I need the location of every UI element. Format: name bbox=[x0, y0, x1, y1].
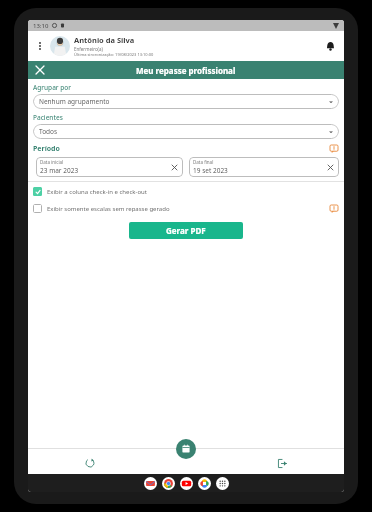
button[interactable]: All apps bbox=[216, 477, 229, 490]
button[interactable]: Help bbox=[328, 203, 339, 214]
staticText: Exibir a coluna check-in e check-out bbox=[47, 188, 147, 196]
button[interactable]: Help bbox=[328, 143, 339, 154]
button[interactable]: Exit bbox=[275, 456, 289, 470]
button[interactable]: Nenhum agrupamento bbox=[33, 94, 339, 109]
staticText: Enfermeiro(a) bbox=[74, 46, 103, 52]
button[interactable]: Todos bbox=[33, 124, 339, 139]
button[interactable]: Menu bbox=[33, 39, 47, 53]
staticText: Nenhum agrupamento bbox=[39, 97, 110, 106]
button[interactable]: Gmail bbox=[144, 477, 157, 490]
button[interactable]: Exibir somente escalas sem repasse gerad… bbox=[28, 202, 344, 215]
staticText: Última sincronização: 19/08/2023 13:10:0… bbox=[74, 52, 154, 57]
staticText: Pacientes bbox=[33, 113, 63, 122]
button[interactable]: Profile photo bbox=[50, 36, 70, 56]
staticText: Agrupar por bbox=[33, 83, 72, 92]
button[interactable]: Gerar PDF bbox=[129, 222, 243, 239]
button[interactable]: YouTube bbox=[180, 477, 193, 490]
staticText: Antônio da Silva bbox=[74, 35, 135, 45]
staticText: 13:10 bbox=[33, 22, 49, 30]
button[interactable]: Chrome bbox=[162, 477, 175, 490]
staticText: Período bbox=[33, 144, 60, 154]
staticText: 19 set 2023 bbox=[193, 166, 228, 175]
staticText: 23 mar 2023 bbox=[40, 166, 79, 175]
staticText: Todos bbox=[39, 127, 58, 136]
button[interactable]: Photos bbox=[198, 477, 211, 490]
staticText: Meu repasse profissional bbox=[136, 65, 236, 76]
staticText: Data inicial bbox=[40, 159, 64, 165]
button[interactable]: Data final bbox=[189, 157, 339, 177]
button[interactable]: Sync bbox=[83, 456, 97, 470]
button[interactable]: Clear date bbox=[169, 162, 179, 172]
button[interactable]: Clear date bbox=[325, 162, 335, 172]
button[interactable]: Calendar bbox=[176, 439, 196, 459]
button[interactable]: Close bbox=[32, 62, 48, 78]
button[interactable]: Data inicial bbox=[36, 157, 183, 177]
staticText: Gerar PDF bbox=[166, 225, 206, 236]
staticText: Exibir somente escalas sem repasse gerad… bbox=[47, 205, 170, 213]
button[interactable]: Exibir a coluna check-in e check-out bbox=[28, 186, 344, 197]
staticText: Data final bbox=[193, 159, 214, 165]
button[interactable]: Notifications bbox=[321, 37, 339, 55]
